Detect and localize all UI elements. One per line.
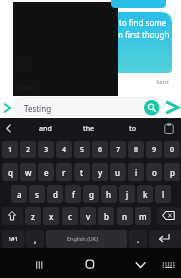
staticText: !#1 (9, 235, 18, 243)
staticText: s (35, 189, 39, 200)
button[interactable]: 8 (128, 141, 144, 158)
staticText: n first though (118, 29, 170, 40)
staticText: h (106, 189, 112, 200)
staticText: 6 (98, 145, 103, 155)
button[interactable] (14, 97, 161, 116)
staticText: k (143, 189, 148, 200)
staticText: a (17, 189, 22, 200)
button[interactable]: d (47, 185, 63, 203)
staticText: n (122, 211, 128, 222)
button[interactable]: 0 (164, 141, 180, 158)
button[interactable]: v (80, 207, 96, 225)
button[interactable]: !#1 (2, 230, 25, 248)
button[interactable] (30, 254, 48, 274)
staticText: j (126, 189, 129, 200)
button[interactable] (149, 230, 180, 248)
button[interactable]: k (137, 185, 153, 203)
staticText: Testing (24, 103, 52, 114)
staticText: y (98, 167, 103, 178)
button[interactable]: h (101, 185, 117, 203)
staticText: and (39, 124, 52, 134)
staticText: o (152, 167, 157, 178)
staticText: i (135, 167, 138, 178)
button[interactable]: z (25, 207, 41, 225)
staticText: . (137, 234, 140, 245)
staticText: u (115, 167, 121, 178)
button[interactable]: x (43, 207, 59, 225)
staticText: to find some (119, 17, 167, 28)
button[interactable]: f (65, 185, 81, 203)
button[interactable]: the (73, 119, 104, 138)
staticText: v (86, 211, 91, 222)
staticText: 0 (170, 145, 175, 155)
button[interactable]: 1 (2, 141, 18, 158)
staticText: d (53, 189, 58, 200)
staticText: 8 (134, 145, 139, 155)
button[interactable]: 9 (146, 141, 162, 158)
staticText: l (162, 189, 165, 200)
staticText: m (139, 211, 147, 222)
button[interactable]: p (164, 163, 180, 181)
button[interactable]: 5 (74, 141, 90, 158)
staticText: 1 (8, 145, 13, 155)
button[interactable]: to (117, 119, 148, 138)
button[interactable] (46, 230, 127, 248)
button[interactable]: q (2, 163, 18, 181)
button[interactable] (144, 100, 160, 116)
button[interactable]: w (20, 163, 36, 181)
button[interactable]: g (83, 185, 99, 203)
staticText: 2 (26, 145, 31, 155)
button[interactable]: s (29, 185, 45, 203)
button[interactable]: b (98, 207, 114, 225)
button[interactable]: j (119, 185, 135, 203)
button[interactable] (164, 100, 180, 115)
button[interactable] (131, 254, 150, 274)
button[interactable]: 7 (110, 141, 126, 158)
staticText: Tallinn (17, 84, 36, 92)
staticText: f (72, 189, 75, 200)
button[interactable]: a (11, 185, 27, 203)
staticText: c (68, 211, 72, 222)
staticText: 5 (80, 145, 85, 155)
button[interactable] (2, 207, 23, 225)
staticText: r (62, 167, 66, 178)
button[interactable]: , (26, 230, 44, 248)
staticText: e (44, 167, 49, 178)
staticText: 9 (152, 145, 157, 155)
staticText: q (8, 167, 13, 178)
button[interactable] (80, 254, 100, 274)
button[interactable]: e (38, 163, 54, 181)
staticText: 7 (116, 145, 121, 155)
button[interactable]: r (56, 163, 72, 181)
button[interactable]: 3 (38, 141, 54, 158)
staticText: z (31, 211, 35, 222)
staticText: g (89, 189, 94, 200)
staticText: x (49, 211, 54, 222)
button[interactable]: i (128, 163, 144, 181)
button[interactable]: 6 (92, 141, 108, 158)
staticText: , (34, 234, 37, 245)
button[interactable]: 4 (56, 141, 72, 158)
button[interactable]: o (146, 163, 162, 181)
button[interactable]: m (135, 207, 151, 225)
button[interactable]: l (155, 185, 171, 203)
staticText: the (83, 124, 95, 134)
staticText: 4 (62, 145, 67, 155)
button[interactable]: n (117, 207, 133, 225)
button[interactable]: u (110, 163, 126, 181)
button[interactable]: and (30, 119, 61, 138)
button[interactable] (161, 258, 178, 272)
button[interactable]: 2 (20, 141, 36, 158)
button[interactable] (157, 207, 180, 225)
staticText: to (129, 124, 136, 134)
button[interactable]: . (129, 230, 147, 248)
button[interactable]: t (74, 163, 90, 181)
button[interactable]: c (62, 207, 78, 225)
staticText: b (104, 211, 109, 222)
button[interactable]: y (92, 163, 108, 181)
staticText: t (80, 167, 84, 178)
staticText: Sent (156, 78, 169, 86)
staticText: 3 (44, 145, 49, 155)
staticText: w (25, 167, 32, 178)
